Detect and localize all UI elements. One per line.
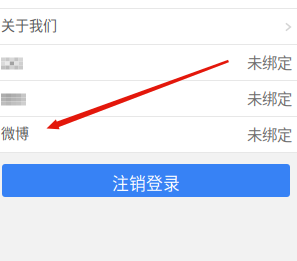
button[interactable]: 关于我们: [0, 9, 297, 45]
staticText: 注销登录: [112, 170, 180, 194]
button[interactable]: 未绑定: [0, 81, 297, 117]
staticText: 微博: [1, 122, 29, 143]
staticText: 未绑定: [247, 50, 292, 73]
button[interactable]: 微博: [0, 117, 297, 153]
button[interactable]: 未绑定: [0, 45, 297, 81]
staticText: 未绑定: [247, 86, 292, 109]
button[interactable]: 注销登录: [2, 164, 290, 197]
staticText: 未绑定: [247, 122, 292, 145]
staticText: 关于我们: [1, 14, 57, 35]
